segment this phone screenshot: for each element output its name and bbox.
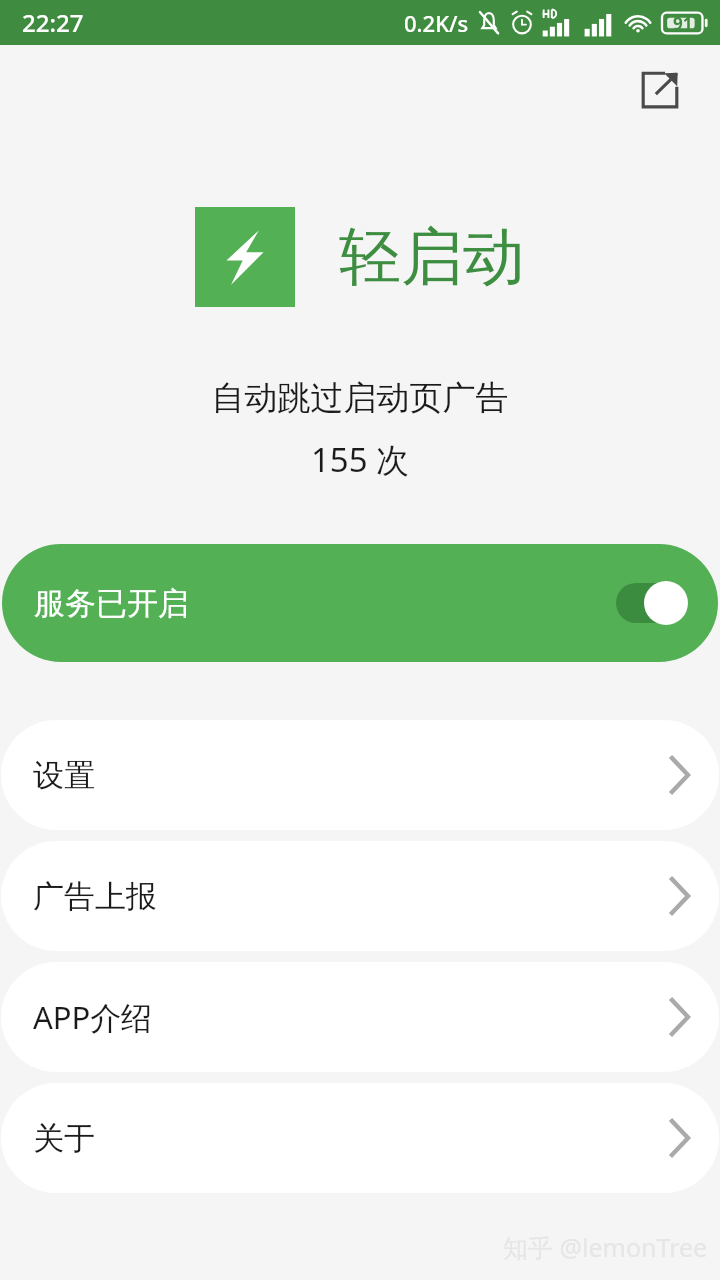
staticText: 轻启动	[339, 218, 525, 296]
button[interactable]: 服务已开启	[2, 544, 718, 662]
staticText: 关于	[33, 1119, 95, 1158]
button[interactable]: APP介绍	[1, 962, 719, 1072]
staticText: 自动跳过启动页广告	[0, 377, 720, 419]
button[interactable]: Open in new window	[628, 58, 692, 122]
staticText: 91	[673, 12, 693, 35]
staticText: 知乎 @lemonTree	[503, 1230, 708, 1264]
staticText: 设置	[33, 756, 95, 795]
staticText: 22:27	[22, 6, 84, 39]
staticText: APP介绍	[33, 996, 153, 1038]
staticText: 广告上报	[33, 877, 157, 916]
button[interactable]: 关于	[1, 1083, 719, 1193]
staticText: 服务已开启	[34, 584, 189, 623]
staticText: 0.2K/s	[404, 8, 469, 38]
button[interactable]: 设置	[1, 720, 719, 830]
button[interactable]: 广告上报	[1, 841, 719, 951]
staticText: 155 次	[0, 437, 720, 482]
